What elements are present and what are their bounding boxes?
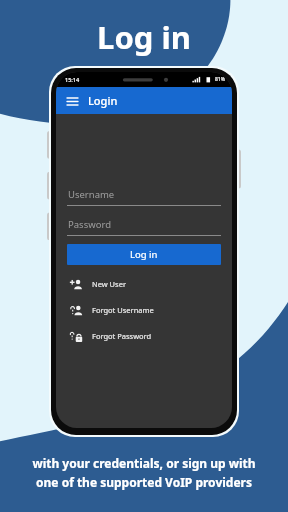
button[interactable]: Password	[67, 218, 221, 236]
staticText: Forgot Username	[92, 305, 154, 315]
staticText: 81%	[215, 76, 225, 83]
staticText: Log in	[130, 248, 158, 261]
staticText: Log in	[97, 16, 191, 58]
button[interactable]: Username	[67, 188, 221, 206]
button[interactable]: Forgot Password	[67, 323, 221, 349]
staticText: New User	[92, 279, 127, 289]
button[interactable]: Open navigation menu	[64, 93, 80, 109]
button[interactable]: Forgot Username	[67, 297, 221, 323]
staticText: Username	[68, 188, 115, 201]
staticText: Password	[68, 218, 111, 231]
staticText: one of the supported VoIP providers	[36, 474, 252, 490]
button[interactable]: Log in	[67, 244, 221, 265]
staticText: 15:14	[65, 76, 80, 83]
staticText: Login	[88, 93, 118, 108]
staticText: with your credentials, or sign up with	[32, 455, 256, 471]
staticText: Forgot Password	[92, 331, 152, 341]
button[interactable]: New User	[67, 271, 221, 297]
